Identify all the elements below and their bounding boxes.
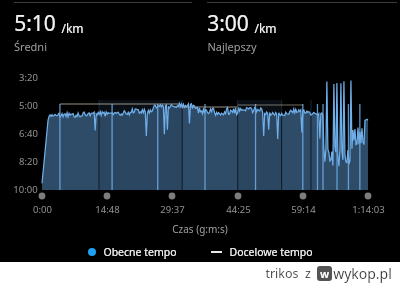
staticText: Czas (g:m:s) bbox=[172, 222, 228, 236]
staticText: 5:10 bbox=[14, 9, 56, 38]
staticText: Obecne tempo bbox=[103, 245, 177, 259]
staticText: 44:25 bbox=[226, 203, 251, 216]
staticText: trikos bbox=[265, 265, 299, 282]
staticText: Najlepszy bbox=[207, 39, 257, 54]
button[interactable]: Obecne tempo bbox=[86, 243, 179, 261]
staticText: W bbox=[320, 268, 329, 280]
staticText: 59:14 bbox=[291, 203, 316, 216]
staticText: 29:37 bbox=[160, 203, 185, 216]
staticText: 3:00 bbox=[207, 9, 249, 38]
staticText: Średni bbox=[14, 39, 47, 54]
other: wykop logo bbox=[317, 266, 332, 281]
staticText: /km bbox=[254, 20, 277, 36]
staticText: 10:00 bbox=[13, 183, 38, 196]
staticText: wykop.pl bbox=[333, 264, 392, 283]
staticText: 0:00 bbox=[33, 203, 52, 216]
button[interactable]: 5:10 bbox=[14, 9, 84, 54]
staticText: 1:14:03 bbox=[352, 203, 385, 216]
button[interactable]: 3:00 bbox=[207, 9, 277, 54]
staticText: /km bbox=[61, 20, 84, 36]
staticText: Docelowe tempo bbox=[229, 245, 313, 259]
staticText: 6:40 bbox=[19, 127, 38, 140]
staticText: 5:00 bbox=[19, 99, 38, 112]
button[interactable]: Docelowe tempo bbox=[209, 243, 315, 261]
staticText: 8:20 bbox=[19, 155, 38, 168]
button[interactable]: trikos bbox=[265, 264, 392, 283]
staticText: 3:20 bbox=[19, 71, 38, 84]
staticText: z bbox=[305, 265, 311, 282]
staticText: 14:48 bbox=[95, 203, 120, 216]
